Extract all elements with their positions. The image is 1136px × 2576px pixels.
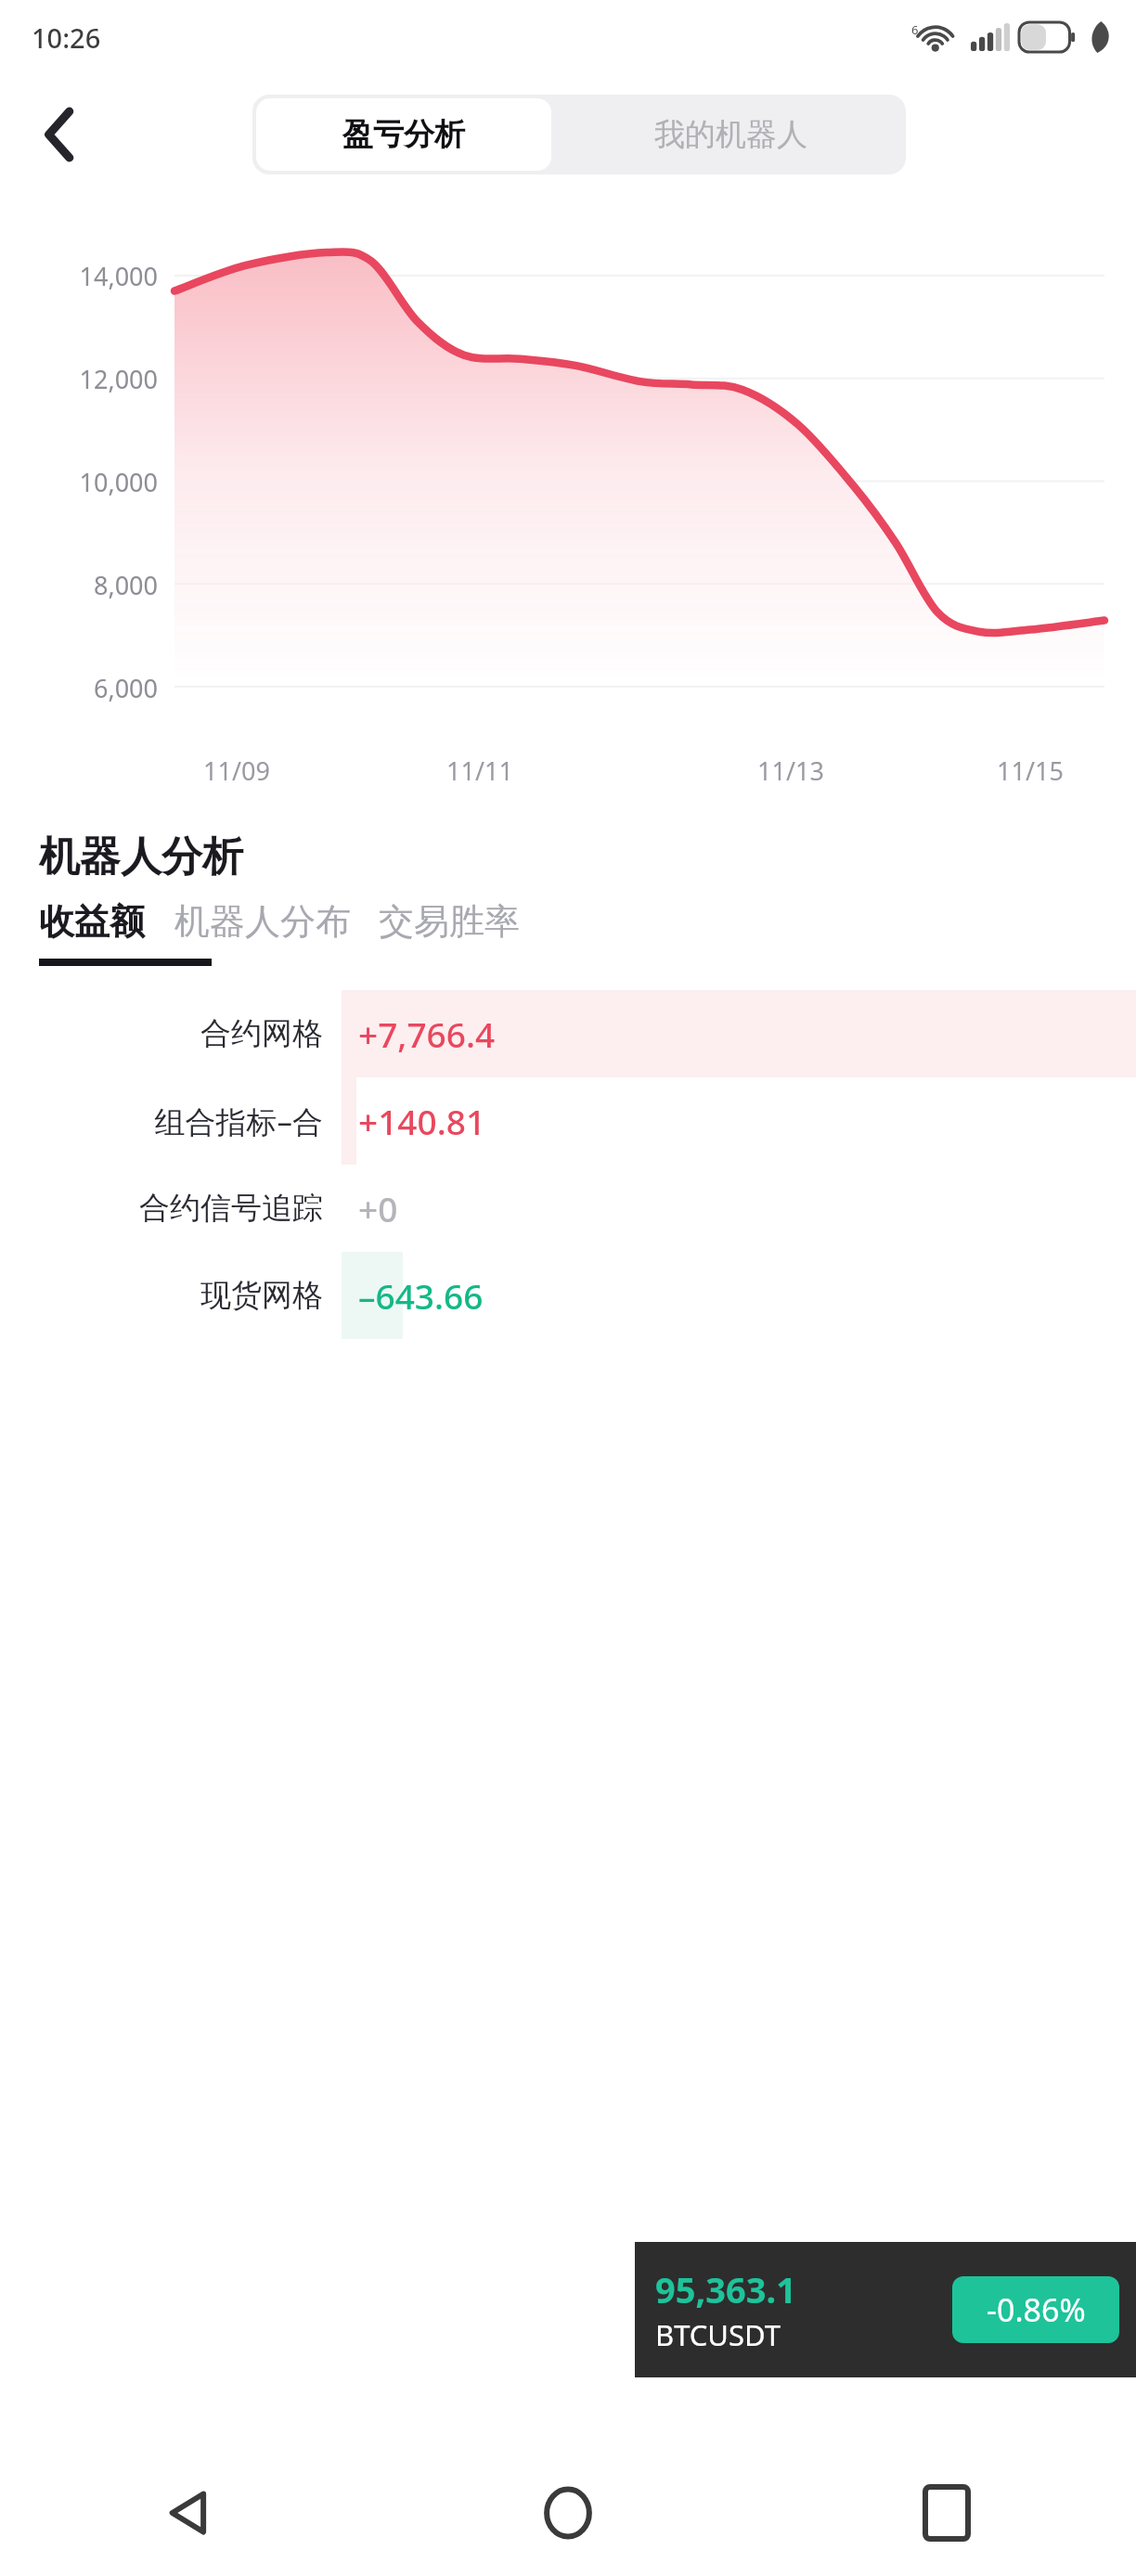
staticText: 11/13 <box>726 753 856 788</box>
button[interactable]: 盈亏分析 <box>256 98 551 171</box>
staticText: 机器人分析 <box>39 831 243 882</box>
staticText: 10,000 <box>0 465 158 499</box>
staticText: –643.66 <box>358 1272 484 1319</box>
button[interactable]: 组合指标–合 <box>0 1077 1136 1165</box>
staticText: 11/15 <box>965 753 1095 788</box>
staticText: 6 <box>911 21 919 38</box>
staticText: 盈亏分析 <box>342 115 465 154</box>
staticText: +7,766.4 <box>358 1011 496 1057</box>
staticText: 95,363.1 <box>655 2265 796 2313</box>
button[interactable]: 收益额 <box>39 899 145 944</box>
staticText: 我的机器人 <box>654 115 807 154</box>
staticText: 12,000 <box>0 362 158 396</box>
staticText: 收益额 <box>39 899 145 944</box>
staticText: 组合指标–合 <box>0 1101 323 1142</box>
staticText: 8,000 <box>0 568 158 602</box>
staticText: +0 <box>358 1185 398 1231</box>
staticText: 合约信号追踪 <box>0 1189 323 1228</box>
button[interactable]: Recents <box>757 2450 1136 2576</box>
staticText: 现货网格 <box>0 1276 323 1315</box>
staticText: 6,000 <box>0 671 158 705</box>
button[interactable]: 合约网格 <box>0 990 1136 1077</box>
button[interactable]: 合约信号追踪 <box>0 1165 1136 1252</box>
button[interactable]: 交易胜率 <box>379 899 520 944</box>
staticText: 11/11 <box>415 753 545 788</box>
button[interactable]: Back <box>0 2450 379 2576</box>
staticText: 交易胜率 <box>379 899 520 944</box>
staticText: BTCUSDT <box>655 2315 781 2354</box>
button[interactable]: Back <box>24 99 95 170</box>
staticText: -0.86% <box>987 2288 1086 2331</box>
button[interactable]: 机器人分布 <box>174 899 351 944</box>
staticText: +140.81 <box>358 1098 486 1144</box>
button[interactable]: -0.86% <box>952 2276 1119 2343</box>
staticText: 11/09 <box>172 753 302 788</box>
staticText: 合约网格 <box>0 1014 323 1053</box>
button[interactable]: 现货网格 <box>0 1252 1136 1339</box>
button[interactable]: 95,363.1 <box>635 2242 1136 2377</box>
staticText: 10:26 <box>32 19 101 56</box>
button[interactable]: Home <box>379 2450 757 2576</box>
staticText: 机器人分布 <box>174 899 351 944</box>
staticText: 14,000 <box>0 259 158 293</box>
button[interactable]: 我的机器人 <box>555 95 906 174</box>
